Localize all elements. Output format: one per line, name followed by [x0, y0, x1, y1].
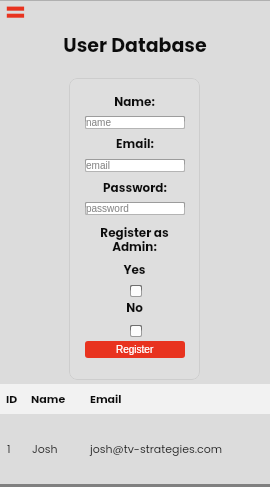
button[interactable]: email — [85, 159, 185, 172]
staticText: Name: — [114, 93, 155, 110]
staticText: Yes — [123, 261, 146, 278]
staticText: Name — [31, 391, 66, 406]
staticText: No — [126, 299, 143, 316]
staticText: name — [86, 117, 112, 128]
staticText: Register — [116, 344, 154, 355]
staticText: Admin: — [112, 238, 157, 255]
staticText: josh@tv-strategies.com — [90, 441, 223, 456]
staticText: email — [86, 160, 110, 171]
button[interactable]: Checkbox — [130, 325, 142, 337]
staticText: Email: — [116, 135, 154, 152]
staticText: 1 — [7, 441, 11, 456]
staticText: password — [86, 203, 129, 214]
staticText: Josh — [32, 441, 58, 456]
button[interactable]: Register — [85, 341, 185, 358]
staticText: User Database — [63, 32, 207, 59]
staticText: ID — [6, 391, 18, 406]
staticText: Email — [90, 391, 122, 406]
staticText: Register as — [100, 224, 169, 241]
button[interactable]: name — [85, 116, 185, 129]
button[interactable]: 1 — [0, 414, 270, 483]
staticText: Password: — [103, 179, 167, 196]
button[interactable]: password — [85, 202, 185, 215]
button[interactable]: Open navigation menu — [6, 6, 25, 18]
button[interactable]: Checkbox — [130, 285, 142, 297]
